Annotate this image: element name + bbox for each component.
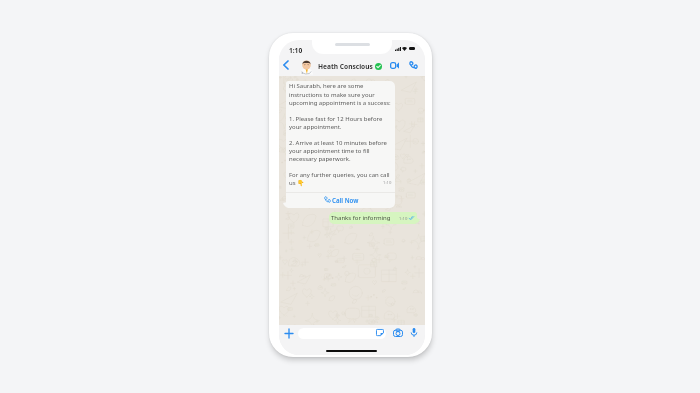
staticText: 1:10 bbox=[399, 216, 408, 222]
staticText: Hi Saurabh, here are some instructions t… bbox=[289, 82, 392, 186]
staticText: Thanks for informing bbox=[331, 214, 391, 222]
button[interactable]: Call Now bbox=[286, 193, 395, 208]
button[interactable]: Video call bbox=[386, 54, 402, 76]
button[interactable] bbox=[298, 328, 386, 339]
button[interactable]: Camera bbox=[392, 328, 403, 337]
button[interactable]: Voice call bbox=[405, 54, 422, 76]
button[interactable]: Voice message bbox=[409, 327, 419, 337]
button[interactable]: Attach bbox=[283, 328, 294, 339]
staticText: Call Now bbox=[332, 196, 359, 204]
staticText: 1:10 bbox=[289, 46, 303, 55]
staticText: 1:10 bbox=[383, 180, 392, 186]
button[interactable]: Thanks for informing bbox=[329, 212, 417, 224]
staticText: Heath Conscious bbox=[318, 62, 373, 71]
button[interactable]: Back bbox=[279, 54, 293, 76]
